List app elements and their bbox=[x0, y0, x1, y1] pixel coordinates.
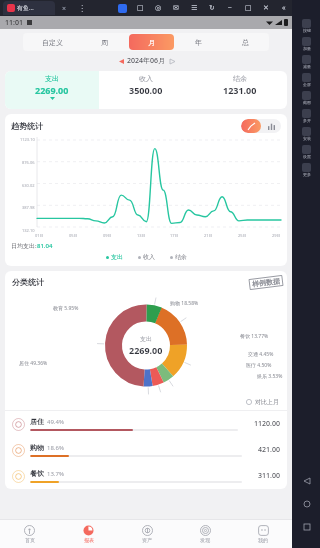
staticText: 876.06 bbox=[22, 160, 35, 165]
button[interactable]: List bbox=[189, 3, 199, 13]
button[interactable]: 按键 bbox=[302, 19, 311, 33]
staticText: 630.02 bbox=[22, 183, 35, 188]
button[interactable]: Back bbox=[301, 475, 312, 486]
button[interactable]: 发现 bbox=[176, 520, 234, 548]
button[interactable]: 资产 bbox=[118, 520, 176, 548]
button[interactable]: 有鱼… bbox=[3, 1, 55, 15]
staticText: 发现 bbox=[200, 537, 210, 543]
staticText: 年 bbox=[195, 38, 202, 47]
button[interactable]: 月 bbox=[129, 34, 174, 50]
staticText: 2269.00 bbox=[129, 344, 163, 356]
staticText: 居住 bbox=[30, 417, 44, 426]
button[interactable]: Close bbox=[261, 3, 271, 13]
staticText: 首页 bbox=[25, 537, 35, 543]
staticText: 日均支出: bbox=[11, 242, 37, 250]
staticText: 教育 5.95% bbox=[53, 305, 79, 312]
button[interactable]: 对比上月 bbox=[246, 398, 279, 406]
button[interactable]: 年 bbox=[176, 34, 221, 50]
staticText: 自定义 bbox=[42, 38, 63, 47]
button[interactable]: 支出 bbox=[5, 71, 99, 109]
staticText: 按键 bbox=[303, 28, 311, 33]
button[interactable]: 购物 bbox=[5, 437, 287, 463]
button[interactable]: 周 bbox=[82, 34, 127, 50]
button[interactable]: Maximize bbox=[243, 3, 253, 13]
staticText: 居住 49.36% bbox=[19, 360, 48, 367]
staticText: ◎ bbox=[155, 4, 162, 12]
staticText: 21日 bbox=[204, 233, 213, 238]
button[interactable]: 支出 bbox=[106, 253, 123, 261]
staticText: ☰ bbox=[191, 4, 198, 12]
button[interactable]: 餐饮 bbox=[5, 463, 287, 489]
staticText: 娱乐 3.53% bbox=[257, 373, 283, 380]
staticText: 全屏 bbox=[303, 82, 311, 87]
button[interactable]: 更多 bbox=[302, 163, 311, 177]
button[interactable]: Account bbox=[153, 3, 163, 13]
button[interactable]: 居住 bbox=[5, 411, 287, 437]
button[interactable]: 减量 bbox=[302, 55, 311, 69]
staticText: 设置 bbox=[303, 154, 311, 159]
button[interactable]: Mail bbox=[171, 3, 181, 13]
button[interactable]: 设置 bbox=[302, 145, 311, 159]
button[interactable]: 收入 bbox=[138, 253, 155, 261]
staticText: 2024年06月 bbox=[127, 56, 166, 66]
staticText: 18.6% bbox=[47, 444, 64, 452]
button[interactable]: Gamepad bbox=[135, 3, 145, 13]
button[interactable]: Menu bbox=[77, 4, 86, 13]
staticText: 11:01 bbox=[5, 18, 23, 28]
staticText: 09日 bbox=[103, 233, 112, 238]
staticText: 截图 bbox=[303, 100, 311, 105]
button[interactable]: Collapse bbox=[279, 3, 289, 13]
button[interactable]: Line chart bbox=[241, 119, 261, 133]
staticText: 49.4% bbox=[47, 418, 64, 426]
button[interactable]: Previous month bbox=[116, 56, 126, 66]
staticText: 3500.00 bbox=[129, 84, 163, 96]
staticText: 多开 bbox=[303, 118, 311, 123]
button[interactable]: 安装 bbox=[302, 127, 311, 141]
staticText: × bbox=[62, 4, 67, 13]
button[interactable]: 结余 bbox=[170, 253, 187, 261]
button[interactable]: 加量 bbox=[302, 37, 311, 51]
staticText: 13.7% bbox=[47, 470, 64, 478]
button[interactable]: 全屏 bbox=[302, 73, 311, 87]
staticText: 支出 bbox=[111, 253, 123, 261]
button[interactable]: 收入 bbox=[99, 71, 193, 109]
button[interactable]: 多开 bbox=[302, 109, 311, 123]
staticText: 结余 bbox=[233, 74, 247, 83]
button[interactable]: Refresh bbox=[207, 3, 217, 13]
button[interactable]: Minimize bbox=[225, 3, 235, 13]
staticText: 01日 bbox=[35, 233, 44, 238]
staticText: 安装 bbox=[303, 136, 311, 141]
staticText: − bbox=[228, 3, 233, 13]
button[interactable]: Close tab bbox=[60, 4, 69, 13]
staticText: 分类统计 bbox=[12, 277, 44, 287]
staticText: 更多 bbox=[303, 172, 311, 177]
button[interactable]: Recents bbox=[301, 521, 312, 532]
staticText: 有鱼… bbox=[17, 4, 34, 12]
button[interactable]: 截图 bbox=[302, 91, 311, 105]
staticText: 餐饮 bbox=[30, 469, 44, 478]
staticText: 结余 bbox=[175, 253, 187, 261]
staticText: 05日 bbox=[69, 233, 78, 238]
staticText: 421.00 bbox=[258, 445, 280, 455]
button[interactable]: 自定义 bbox=[24, 34, 80, 50]
button[interactable]: 首页 bbox=[0, 520, 59, 548]
button[interactable]: Home bbox=[301, 498, 312, 509]
staticText: 2269.00 bbox=[35, 84, 69, 96]
staticText: 医疗 4.50% bbox=[246, 362, 272, 369]
button[interactable]: Next month bbox=[167, 56, 177, 66]
button[interactable]: 结余 bbox=[193, 71, 287, 109]
button[interactable]: Boost bbox=[118, 4, 127, 13]
button[interactable]: 我的 bbox=[234, 520, 292, 548]
staticText: 收入 bbox=[143, 253, 155, 261]
staticText: 支出 bbox=[140, 335, 152, 343]
staticText: 加量 bbox=[303, 46, 311, 51]
staticText: 17日 bbox=[170, 233, 179, 238]
button[interactable]: Bar chart bbox=[261, 119, 281, 133]
staticText: ✕ bbox=[263, 4, 269, 12]
staticText: 对比上月 bbox=[255, 398, 279, 406]
staticText: 387.98 bbox=[22, 205, 35, 210]
button[interactable]: 总 bbox=[223, 34, 268, 50]
staticText: 132.10 bbox=[22, 228, 35, 233]
button[interactable]: 报表 bbox=[59, 520, 118, 548]
staticText: 样例数据 bbox=[252, 276, 280, 289]
